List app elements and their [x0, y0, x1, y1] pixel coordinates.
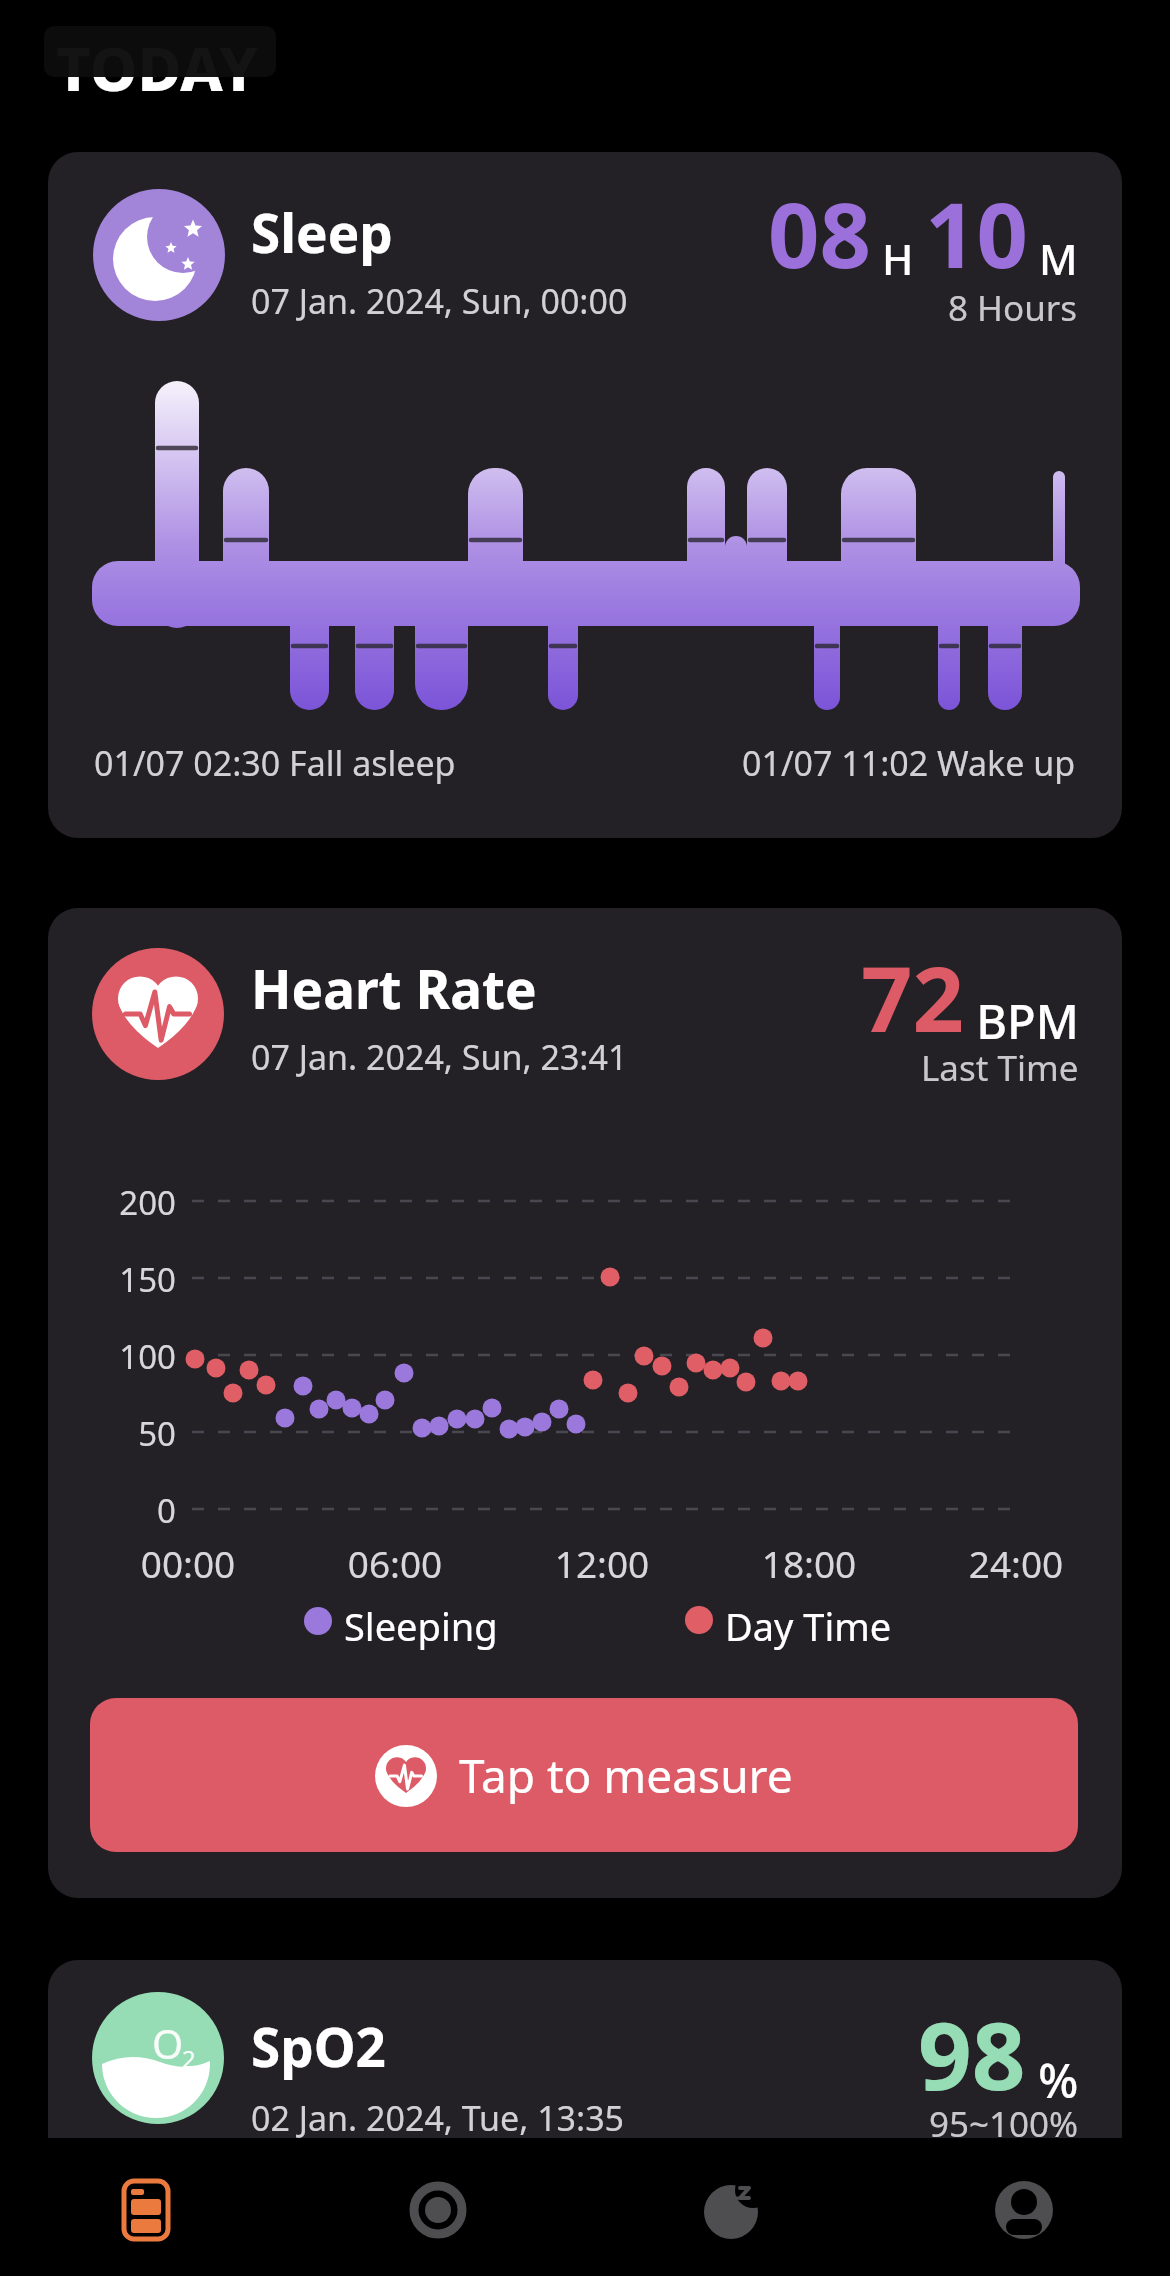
staticText: % [1026, 2048, 1079, 2112]
staticText: Last Time [921, 1044, 1079, 1092]
staticText: SpO2 [251, 2010, 386, 2082]
staticText: Day Time [725, 1600, 892, 1652]
staticText: 95~100% [929, 2100, 1079, 2148]
button[interactable]: Sleep [48, 152, 1122, 838]
button[interactable] [584, 2138, 877, 2276]
staticText: 01/07 02:30 Fall asleep [94, 740, 456, 786]
staticText: Heart Rate [251, 952, 537, 1024]
staticText: 10 [925, 172, 1028, 295]
button[interactable] [877, 2138, 1170, 2276]
staticText: 02 Jan. 2024, Tue, 13:35 [251, 2095, 625, 2141]
staticText: 2 [182, 2042, 196, 2075]
staticText: M [1028, 230, 1078, 287]
staticText: 07 Jan. 2024, Sun, 00:00 [251, 278, 628, 324]
staticText: 8 Hours [948, 284, 1078, 332]
staticText: Sleep [251, 196, 393, 268]
staticText: BPM [964, 989, 1079, 1053]
staticText: H [871, 230, 925, 287]
staticText: Tap to measure [459, 1744, 793, 1807]
staticText: 24:00 [936, 1538, 1096, 1588]
staticText: O [152, 2016, 184, 2070]
staticText: 0 [86, 1488, 176, 1533]
staticText: 150 [86, 1257, 176, 1302]
staticText: 72 [861, 936, 964, 1059]
staticText: 18:00 [729, 1538, 889, 1588]
staticText: 08 [768, 172, 871, 295]
staticText: 01/07 11:02 Wake up [742, 740, 1076, 786]
staticText: 06:00 [315, 1538, 475, 1588]
button[interactable] [0, 2138, 292, 2276]
staticText: 100 [86, 1334, 176, 1379]
staticText: TODAY [56, 27, 258, 77]
button[interactable] [292, 2138, 584, 2276]
button[interactable]: SpO2 [48, 1960, 1122, 2276]
button[interactable]: Tap to measure [90, 1698, 1078, 1852]
staticText: 12:00 [522, 1538, 682, 1588]
staticText: 07 Jan. 2024, Sun, 23:41 [251, 1034, 628, 1080]
staticText: TODAY [56, 27, 258, 109]
staticText: Sleeping [344, 1600, 498, 1652]
button[interactable]: Heart Rate [48, 908, 1122, 1898]
staticText: 200 [86, 1180, 176, 1225]
staticText: 00:00 [108, 1538, 268, 1588]
staticText: 50 [86, 1411, 176, 1456]
staticText: 98 [918, 1990, 1026, 2118]
